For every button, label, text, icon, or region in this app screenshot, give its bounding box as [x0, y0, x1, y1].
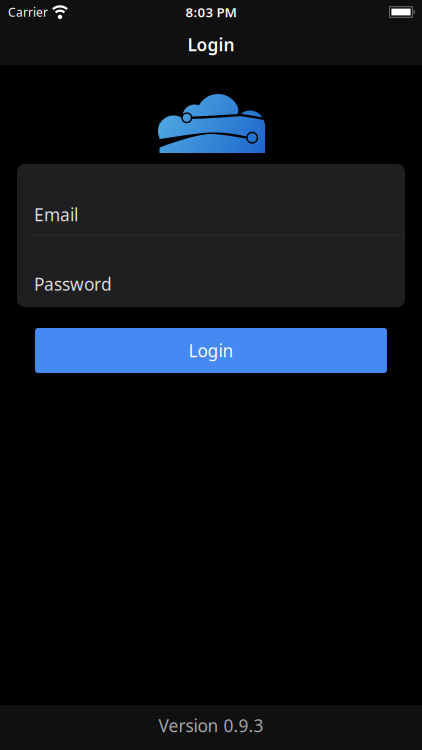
button[interactable]: Password: [17, 235, 405, 307]
staticText: Login: [188, 339, 233, 362]
staticText: Email: [34, 203, 78, 226]
staticText: Carrier: [8, 4, 48, 20]
staticText: 8:03 PM: [185, 3, 236, 21]
button[interactable]: Email: [17, 164, 405, 234]
staticText: Login: [187, 33, 234, 56]
button[interactable]: Login: [35, 328, 387, 373]
staticText: Version 0.9.3: [158, 714, 263, 737]
staticText: Password: [34, 272, 112, 295]
